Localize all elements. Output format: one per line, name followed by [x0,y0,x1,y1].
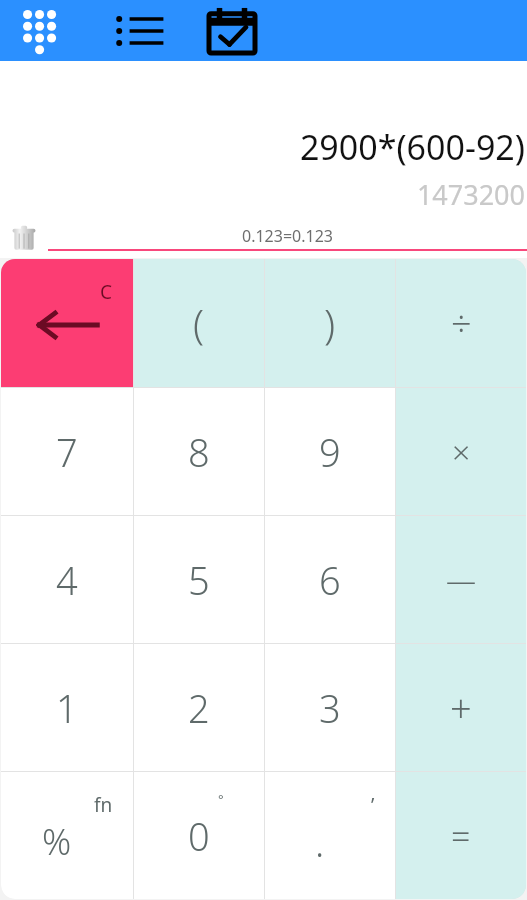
staticText: 0.123=0.123 [242,225,333,247]
button[interactable]: Clear history [6,221,42,255]
button[interactable]: 8 [134,388,264,515]
button[interactable]: = [396,772,526,899]
button[interactable]: 2 [134,644,264,771]
staticText: — [446,559,476,600]
staticText: ’ [371,792,375,818]
button[interactable]: 4 [1,516,133,643]
button[interactable]: Tasks [200,0,264,61]
button[interactable]: 3 [265,644,395,771]
staticText: 6 [319,554,341,606]
staticText: % [42,817,72,866]
staticText: . [315,816,325,868]
button[interactable]: — [396,516,526,643]
button[interactable]: 1 [1,644,133,771]
staticText: 7 [56,426,78,478]
staticText: 5 [188,554,210,606]
staticText: ) [324,296,336,350]
staticText: 8 [188,426,210,478]
button[interactable]: 0 [134,772,264,899]
staticText: 1 [56,682,78,734]
staticText: + [450,682,472,734]
button[interactable]: . [265,772,395,899]
button[interactable]: % [1,772,133,899]
button[interactable]: History list [108,0,172,61]
staticText: × [452,430,471,474]
button[interactable]: 5 [134,516,264,643]
staticText: ÷ [451,299,472,348]
button[interactable]: + [396,644,526,771]
button[interactable]: 0.123=0.123 [48,225,527,251]
button[interactable]: C [1,259,133,387]
staticText: 2 [188,682,210,734]
staticText: 1473200 [416,176,525,213]
staticText: 9 [319,426,341,478]
staticText: fn [94,792,113,818]
staticText: = [451,813,471,859]
staticText: ( [193,296,205,350]
button[interactable]: Keypad [10,0,72,61]
button[interactable]: 9 [265,388,395,515]
staticText: C [100,279,113,305]
button[interactable]: 7 [1,388,133,515]
button[interactable]: ( [134,259,264,387]
button[interactable]: × [396,388,526,515]
staticText: 3 [319,682,341,734]
staticText: 4 [56,554,78,606]
button[interactable]: ) [265,259,395,387]
button[interactable]: ÷ [396,259,526,387]
button[interactable]: 6 [265,516,395,643]
staticText: 2900*(600-92) [299,124,525,170]
staticText: 0 [188,810,210,862]
staticText: ° [218,790,224,808]
button[interactable]: 2900*(600-92) [0,62,527,221]
